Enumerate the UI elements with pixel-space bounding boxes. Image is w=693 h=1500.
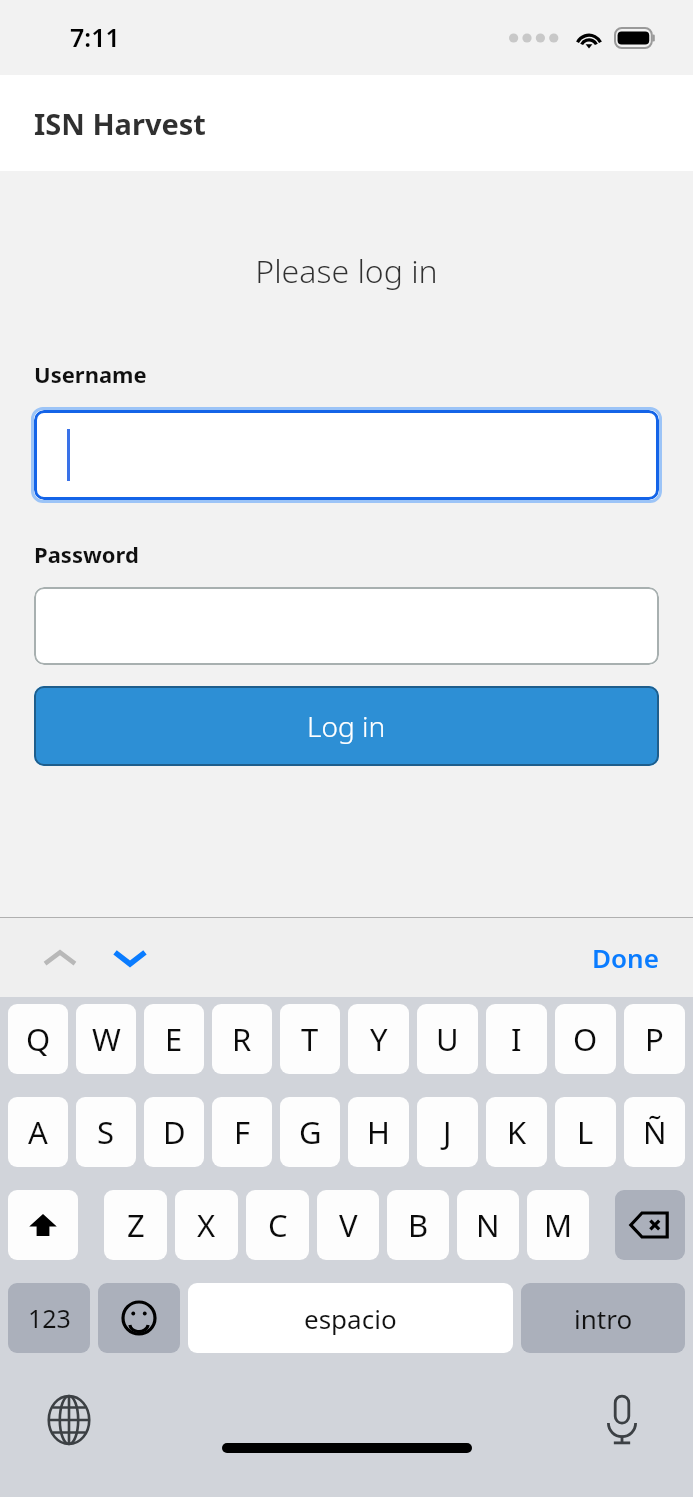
button[interactable]: Shift xyxy=(8,1190,78,1260)
button[interactable]: Z xyxy=(104,1190,167,1260)
button[interactable]: T xyxy=(280,1004,340,1074)
staticText: U xyxy=(436,1018,459,1060)
staticText: Password xyxy=(34,539,139,569)
button[interactable]: J xyxy=(417,1097,478,1167)
button[interactable]: D xyxy=(144,1097,204,1167)
button[interactable] xyxy=(34,587,659,665)
staticText: L xyxy=(577,1111,594,1153)
staticText: Z xyxy=(127,1204,145,1246)
staticText: D xyxy=(163,1111,186,1153)
button[interactable]: Next field xyxy=(100,928,160,988)
staticText: P xyxy=(645,1018,664,1060)
staticText: G xyxy=(299,1111,322,1153)
button[interactable]: H xyxy=(348,1097,409,1167)
staticText: F xyxy=(234,1111,251,1153)
staticText: K xyxy=(507,1111,527,1153)
button[interactable]: N xyxy=(457,1190,519,1260)
staticText: Please log in xyxy=(0,249,693,293)
staticText: E xyxy=(165,1018,183,1060)
button[interactable]: Previous field xyxy=(30,928,90,988)
button[interactable]: A xyxy=(8,1097,68,1167)
staticText: Q xyxy=(26,1018,51,1060)
staticText: N xyxy=(476,1204,500,1246)
staticText: espacio xyxy=(304,1301,397,1336)
staticText: T xyxy=(301,1018,319,1060)
staticText: V xyxy=(339,1204,358,1246)
button[interactable]: R xyxy=(212,1004,272,1074)
button[interactable]: K xyxy=(486,1097,547,1167)
button[interactable]: Y xyxy=(348,1004,409,1074)
staticText: ISN Harvest xyxy=(34,104,206,143)
button[interactable]: I xyxy=(486,1004,547,1074)
button[interactable]: G xyxy=(280,1097,340,1167)
button[interactable]: intro xyxy=(521,1283,685,1353)
staticText: Ñ xyxy=(643,1111,667,1153)
button[interactable]: X xyxy=(175,1190,238,1260)
staticText: Y xyxy=(370,1018,388,1060)
button[interactable]: espacio xyxy=(188,1283,513,1353)
staticText: Done xyxy=(592,940,659,975)
button[interactable]: Ñ xyxy=(624,1097,685,1167)
button[interactable]: V xyxy=(317,1190,379,1260)
staticText: B xyxy=(408,1204,429,1246)
button[interactable]: P xyxy=(624,1004,685,1074)
button[interactable]: 123 xyxy=(8,1283,90,1353)
staticText: 7:11 xyxy=(70,20,120,54)
staticText: C xyxy=(268,1204,288,1246)
staticText: Username xyxy=(34,359,147,389)
button[interactable]: Change keyboard language xyxy=(38,1389,100,1451)
button[interactable]: Emoji xyxy=(98,1283,180,1353)
button[interactable]: F xyxy=(212,1097,272,1167)
staticText: J xyxy=(443,1111,452,1153)
staticText: S xyxy=(97,1111,115,1153)
button[interactable]: Backspace xyxy=(615,1190,685,1260)
button[interactable]: S xyxy=(76,1097,136,1167)
button[interactable]: O xyxy=(555,1004,616,1074)
staticText: R xyxy=(232,1018,252,1060)
button[interactable]: E xyxy=(144,1004,204,1074)
staticText: intro xyxy=(574,1301,633,1336)
button[interactable]: M xyxy=(527,1190,589,1260)
button[interactable]: Log in xyxy=(34,686,659,766)
staticText: H xyxy=(367,1111,390,1153)
staticText: O xyxy=(573,1018,598,1060)
button[interactable]: U xyxy=(417,1004,478,1074)
staticText: W xyxy=(92,1018,121,1060)
button[interactable]: B xyxy=(387,1190,449,1260)
button[interactable]: W xyxy=(76,1004,136,1074)
button[interactable]: L xyxy=(555,1097,616,1167)
button[interactable]: Q xyxy=(8,1004,68,1074)
staticText: A xyxy=(28,1111,48,1153)
button[interactable]: Done xyxy=(580,932,671,983)
staticText: M xyxy=(544,1204,573,1246)
staticText: Log in xyxy=(307,707,386,745)
button[interactable]: C xyxy=(246,1190,309,1260)
staticText: I xyxy=(511,1018,522,1060)
staticText: 123 xyxy=(28,1301,71,1335)
button[interactable] xyxy=(31,407,662,503)
button[interactable]: Dictate xyxy=(591,1389,653,1451)
staticText: X xyxy=(197,1204,216,1246)
